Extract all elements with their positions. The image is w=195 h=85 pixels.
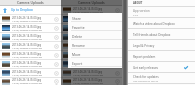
staticText: Watch a video about Dropbox — [133, 22, 175, 26]
staticText: 2013-06-26 14.35.00.jpg — [12, 43, 42, 47]
button[interactable]: More options — [115, 17, 120, 22]
staticText: Rename — [72, 43, 85, 47]
button[interactable]: 2013-06-26 14.35.00.jpg — [61, 69, 122, 77]
staticText: 1.8 MB, modified 5 months ago — [12, 65, 43, 68]
staticText: 1.8 MB, modified 5 months ago — [73, 29, 104, 32]
staticText: 2013-06-26 14.35.00.jpg — [73, 70, 103, 74]
staticText: 2013-06-26 14.35.00.jpg — [12, 61, 42, 65]
staticText: Move — [72, 52, 81, 56]
staticText: Report problem — [133, 55, 156, 59]
button[interactable]: 2013-06-26 14.35.00.jpg — [61, 78, 122, 85]
button[interactable]: 2013-06-26 14.35.00.jpg — [61, 60, 122, 68]
button[interactable]: Watch a video about Dropbox — [128, 18, 195, 29]
button[interactable]: 2013-06-26 14.35.00.jpg — [0, 51, 61, 59]
staticText: 1.8 MB, modified 5 months ago — [12, 56, 43, 59]
button[interactable]: 2013-06-26 14.35.00.jpg — [0, 24, 61, 32]
button[interactable]: 2013-06-26 14.35.00.jpg — [0, 78, 61, 85]
staticText: 1.8 MB, modified 5 months ago — [73, 82, 104, 85]
staticText: 1.8 MB, modified 5 months ago — [73, 56, 104, 59]
button[interactable]: 2013-06-26 14.35.00.jpg — [0, 42, 61, 50]
button[interactable]: More options — [115, 71, 120, 76]
button[interactable]: More options — [115, 8, 120, 13]
button[interactable]: More options — [54, 79, 59, 84]
staticText: 2013-06-26 14.35.00.jpg — [73, 7, 103, 11]
staticText: 2013-06-26 14.35.00.jpg — [12, 70, 42, 74]
button[interactable]: More options — [54, 17, 59, 22]
button[interactable]: 2013-06-26 14.35.00.jpg — [61, 33, 122, 41]
staticText: Delete — [72, 34, 83, 38]
button[interactable]: Rename — [68, 40, 129, 49]
staticText: App version — [133, 9, 150, 13]
staticText: 2013-06-26 14.35.00.jpg — [73, 61, 103, 65]
staticText: 1.8 MB, modified 5 months ago — [73, 47, 104, 50]
button[interactable]: More options — [54, 26, 59, 31]
staticText: Export — [72, 61, 83, 65]
button[interactable]: 2013-06-26 14.35.00.jpg — [0, 60, 61, 68]
button[interactable]: More options — [115, 35, 120, 40]
button[interactable]: Share — [68, 13, 129, 22]
button[interactable]: More options — [115, 44, 120, 49]
staticText: Legal & Privacy — [133, 44, 155, 48]
staticText: 2013-06-26 14.35.00.jpg — [12, 78, 42, 82]
button[interactable]: Report problem — [128, 51, 195, 62]
button[interactable]: 2013-06-26 14.35.00.jpg — [0, 33, 61, 41]
staticText: Camera Uploads — [17, 0, 44, 5]
button[interactable]: More options — [54, 35, 59, 40]
button[interactable]: Up to Dropbox — [0, 6, 61, 14]
button[interactable]: More options — [115, 26, 120, 31]
staticText: 1.8 MB, modified 5 months ago — [73, 65, 104, 68]
staticText: 2013-06-26 14.35.00.jpg — [12, 34, 42, 38]
staticText: 1.8 MB, modified 5 months ago — [73, 11, 104, 14]
button[interactable]: 2013-06-26 14.35.00.jpg — [61, 51, 122, 59]
staticText: Tell friends about Dropbox — [133, 33, 171, 37]
button[interactable]: Tell friends about Dropbox — [128, 29, 195, 40]
button[interactable]: Legal & Privacy — [128, 40, 195, 51]
staticText: Favorite — [72, 25, 85, 29]
staticText: 2013-06-26 14.35.00.jpg — [73, 16, 103, 20]
button[interactable]: 2013-06-26 14.35.00.jpg — [61, 15, 122, 23]
staticText: Get early releases — [133, 66, 159, 70]
button[interactable]: More options — [115, 53, 120, 58]
staticText: 2013-06-26 14.35.00.jpg — [73, 78, 103, 82]
button[interactable]: More options — [54, 53, 59, 58]
staticText: Check for updates — [133, 75, 159, 79]
button[interactable]: 2013-06-26 14.35.00.jpg — [0, 69, 61, 77]
button[interactable]: 2013-06-26 14.35.00.jpg — [61, 24, 122, 32]
staticText: 2013-06-26 14.35.00.jpg — [73, 34, 103, 38]
button[interactable]: Get early releases — [128, 62, 195, 73]
staticText: 1.8 MB, modified 5 months ago — [12, 74, 43, 77]
staticText: 1.8 MB, modified 5 months ago — [12, 47, 43, 50]
button[interactable]: More options — [54, 62, 59, 67]
staticText: 1.8 MB, modified 5 months ago — [73, 20, 104, 23]
staticText: 2013-06-26 14.35.00.jpg — [73, 52, 103, 56]
button[interactable]: Export — [68, 58, 129, 67]
staticText: Camera Uploads — [78, 0, 105, 5]
button[interactable]: Delete — [68, 31, 129, 40]
staticText: 2013-06-26 14.35.00.jpg — [12, 25, 42, 29]
button[interactable]: More options — [115, 79, 120, 84]
staticText: 2013-06-26 14.35.00.jpg — [73, 25, 103, 29]
button[interactable]: 2013-06-26 14.35.00.jpg — [61, 6, 122, 14]
button[interactable]: App version — [128, 7, 195, 18]
staticText: 2013-06-26 14.35.00.jpg — [12, 52, 42, 56]
button[interactable]: Check for updates — [128, 73, 195, 84]
staticText: 2013-06-26 14.35.00.jpg — [73, 43, 103, 47]
button[interactable]: Favorite — [68, 22, 129, 31]
button[interactable]: More options — [54, 71, 59, 76]
staticText: 2.2.0 — [133, 14, 139, 17]
staticText: 1.8 MB, modified 5 months ago — [12, 20, 43, 23]
staticText: ABOUT — [133, 1, 143, 5]
staticText: Share — [72, 16, 81, 20]
button[interactable]: More options — [54, 44, 59, 49]
button[interactable]: Move — [68, 49, 129, 58]
button[interactable]: 2013-06-26 14.35.00.jpg — [0, 15, 61, 23]
staticText: 1.8 MB, modified 5 months ago — [73, 74, 104, 77]
staticText: Last checked on Dec 26 — [133, 80, 159, 83]
staticText: Up to Dropbox — [11, 8, 34, 12]
staticText: 2013-06-26 14.35.00.jpg — [12, 16, 42, 20]
staticText: 1.8 MB, modified 5 months ago — [12, 82, 43, 85]
button[interactable]: More options — [115, 62, 120, 67]
staticText: 1.8 MB, modified 5 months ago — [12, 29, 43, 32]
button[interactable]: 2013-06-26 14.35.00.jpg — [61, 42, 122, 50]
staticText: 1.8 MB, modified 5 months ago — [73, 38, 104, 41]
